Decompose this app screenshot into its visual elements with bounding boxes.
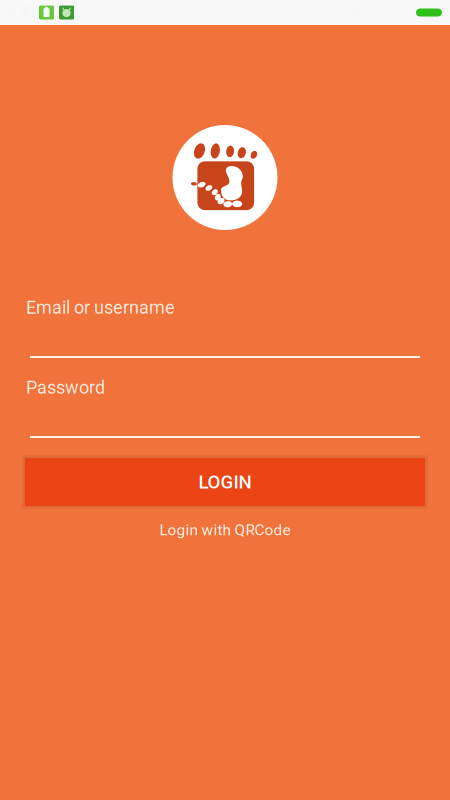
button[interactable]: Login with QRCode <box>153 515 296 545</box>
staticText: Password <box>26 377 105 398</box>
staticText: Email or username <box>26 297 175 318</box>
staticText: Login with QRCode <box>159 521 290 539</box>
staticText: LOGIN <box>198 471 251 493</box>
button[interactable]: LOGIN <box>22 455 428 509</box>
